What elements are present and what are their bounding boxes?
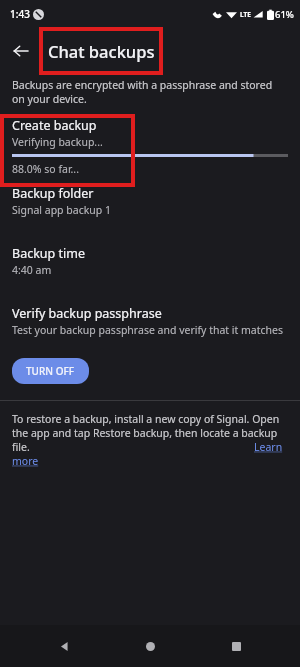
button[interactable]: Backup time (0, 245, 300, 277)
staticText: Learn (254, 440, 283, 454)
staticText: 88.0% so far... (12, 162, 80, 176)
staticText: Test your backup passphrase and verify t… (12, 323, 284, 337)
button[interactable]: Verify backup passphrase (0, 305, 300, 337)
button[interactable]: Backup folder (0, 185, 300, 217)
staticText: Verify backup passphrase (12, 305, 162, 322)
button[interactable]: Home (137, 633, 163, 659)
button[interactable]: Create backup (0, 117, 300, 176)
button[interactable]: Recents (223, 633, 249, 659)
button[interactable]: Back (51, 633, 77, 659)
staticText: 61% (275, 8, 294, 21)
staticText: Backup folder (12, 185, 94, 202)
button[interactable]: Learn (254, 440, 283, 454)
staticText: 4:40 am (12, 263, 52, 277)
staticText: Backups are encrypted with a passphrase … (12, 78, 284, 106)
button[interactable]: more (12, 454, 39, 468)
button[interactable]: TURN OFF (12, 358, 89, 384)
staticText: more (12, 454, 39, 468)
staticText: Signal app backup 1 (12, 203, 111, 217)
staticText: Chat backups (48, 40, 155, 62)
staticText: Create backup (12, 117, 97, 134)
staticText: Verifying backup... (12, 135, 103, 149)
staticText: Backup time (12, 245, 85, 262)
staticText: TURN OFF (26, 364, 75, 378)
staticText: LTE (240, 10, 251, 19)
staticText: 1:43 (10, 7, 30, 21)
staticText: To restore a backup, install a new copy … (12, 412, 286, 454)
button[interactable]: Back (8, 38, 34, 64)
